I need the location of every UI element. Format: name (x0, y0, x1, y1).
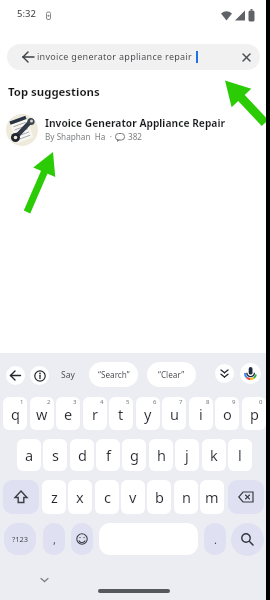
button[interactable]: “Search” (89, 362, 138, 387)
staticText: Top suggestions (8, 84, 100, 100)
staticText: 2 (47, 398, 51, 406)
button[interactable]: . (204, 523, 226, 555)
staticText: o (223, 404, 232, 424)
staticText: b (155, 487, 164, 507)
button[interactable] (3, 480, 39, 514)
staticText: y (144, 404, 152, 424)
button[interactable] (231, 523, 264, 556)
button[interactable]: i (189, 397, 213, 430)
staticText: h (157, 445, 166, 465)
button[interactable]: l (228, 439, 252, 471)
staticText: 0 (259, 398, 263, 406)
staticText: n (182, 487, 191, 507)
staticText: 3 (73, 398, 77, 406)
button[interactable] (228, 480, 264, 514)
button[interactable]: h (149, 439, 173, 471)
button[interactable] (99, 523, 198, 555)
staticText: “Search” (98, 369, 130, 380)
staticText: invoice generator appliance repair (37, 50, 193, 62)
button[interactable]: d (70, 439, 94, 471)
staticText: d (78, 445, 87, 465)
staticText: a (25, 445, 34, 465)
staticText: x (76, 487, 84, 507)
button[interactable]: invoice generator appliance repair (7, 44, 260, 70)
staticText: “Clear” (158, 369, 185, 380)
button[interactable]: o (215, 397, 239, 430)
staticText: 382 (128, 131, 143, 142)
button[interactable] (71, 523, 93, 555)
staticText: 5:32 (17, 7, 36, 20)
button[interactable]: z (42, 480, 66, 514)
button[interactable]: q (3, 397, 27, 430)
button[interactable] (240, 363, 261, 384)
staticText: g (130, 445, 139, 465)
staticText: v (129, 487, 137, 507)
button[interactable]: m (200, 480, 224, 514)
staticText: 9 (232, 398, 236, 406)
staticText: e (64, 404, 73, 424)
button[interactable]: k (202, 439, 226, 471)
button[interactable] (6, 366, 25, 385)
button[interactable]: b (147, 480, 171, 514)
button[interactable]: j (175, 439, 199, 471)
staticText: 6 (153, 398, 157, 406)
staticText: f (106, 445, 111, 465)
button[interactable]: “Clear” (147, 362, 196, 387)
staticText: u (170, 404, 179, 424)
button[interactable]: n (174, 480, 198, 514)
staticText: 4 (100, 398, 104, 406)
staticText: ?123 (12, 534, 29, 544)
staticText: , (53, 532, 56, 547)
button[interactable]: , (43, 523, 65, 555)
button[interactable]: g (122, 439, 146, 471)
staticText: 1 (20, 398, 24, 406)
staticText: t (118, 404, 124, 424)
button[interactable]: c (95, 480, 119, 514)
staticText: i (199, 404, 203, 424)
staticText: 8 (206, 398, 210, 406)
staticText: Say (61, 369, 75, 381)
button[interactable]: ?123 (4, 523, 36, 555)
button[interactable]: a (17, 439, 41, 471)
button[interactable]: x (68, 480, 92, 514)
button[interactable]: Invoice Generator Appliance Repair (0, 112, 270, 150)
staticText: s (52, 445, 59, 465)
button[interactable]: e (56, 397, 80, 430)
staticText: r (92, 404, 98, 424)
staticText: w (36, 404, 48, 424)
staticText: j (185, 445, 189, 465)
button[interactable]: r (83, 397, 107, 430)
staticText: 7 (179, 398, 183, 406)
button[interactable]: v (121, 480, 145, 514)
staticText: 5 (126, 398, 130, 406)
staticText: p (250, 404, 259, 424)
staticText: l (238, 445, 242, 465)
staticText: m (205, 487, 219, 507)
button[interactable]: t (109, 397, 133, 430)
button[interactable]: y (136, 397, 160, 430)
staticText: . (214, 532, 217, 547)
button[interactable] (215, 364, 234, 383)
staticText: By Shaphan Ha · (45, 131, 112, 142)
button[interactable]: w (30, 397, 54, 430)
staticText: z (51, 487, 58, 507)
button[interactable]: p (242, 397, 266, 430)
staticText: q (11, 404, 20, 424)
button[interactable]: f (96, 439, 120, 471)
staticText: k (210, 445, 218, 465)
staticText: c (104, 487, 111, 507)
button[interactable] (242, 53, 251, 62)
button[interactable] (30, 366, 49, 385)
button[interactable]: s (43, 439, 67, 471)
button[interactable]: u (162, 397, 186, 430)
staticText: Invoice Generator Appliance Repair (45, 116, 226, 130)
